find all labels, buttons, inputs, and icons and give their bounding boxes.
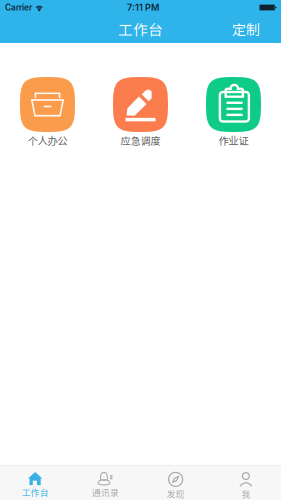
staticText: 作业证	[218, 133, 248, 148]
button[interactable]: 定制	[220, 14, 281, 44]
staticText: 个人办公	[27, 133, 67, 148]
button[interactable]: 作业证	[187, 77, 280, 148]
staticText: 7:11 PM	[127, 2, 159, 13]
staticText: 我	[241, 487, 250, 500]
staticText: 发现	[167, 487, 185, 500]
staticText: 通讯录	[92, 486, 119, 498]
button[interactable]: 我	[211, 466, 281, 500]
staticText: 定制	[232, 19, 260, 39]
staticText: Carrier	[5, 2, 32, 12]
button[interactable]: 发现	[140, 466, 211, 500]
button[interactable]: 工作台	[0, 466, 70, 500]
staticText: 应急调度	[120, 133, 160, 148]
button[interactable]: 个人办公	[1, 77, 94, 148]
staticText: 工作台	[118, 18, 163, 40]
button[interactable]: 应急调度	[94, 77, 187, 148]
staticText: 工作台	[22, 486, 49, 498]
button[interactable]: 通讯录	[70, 466, 140, 500]
